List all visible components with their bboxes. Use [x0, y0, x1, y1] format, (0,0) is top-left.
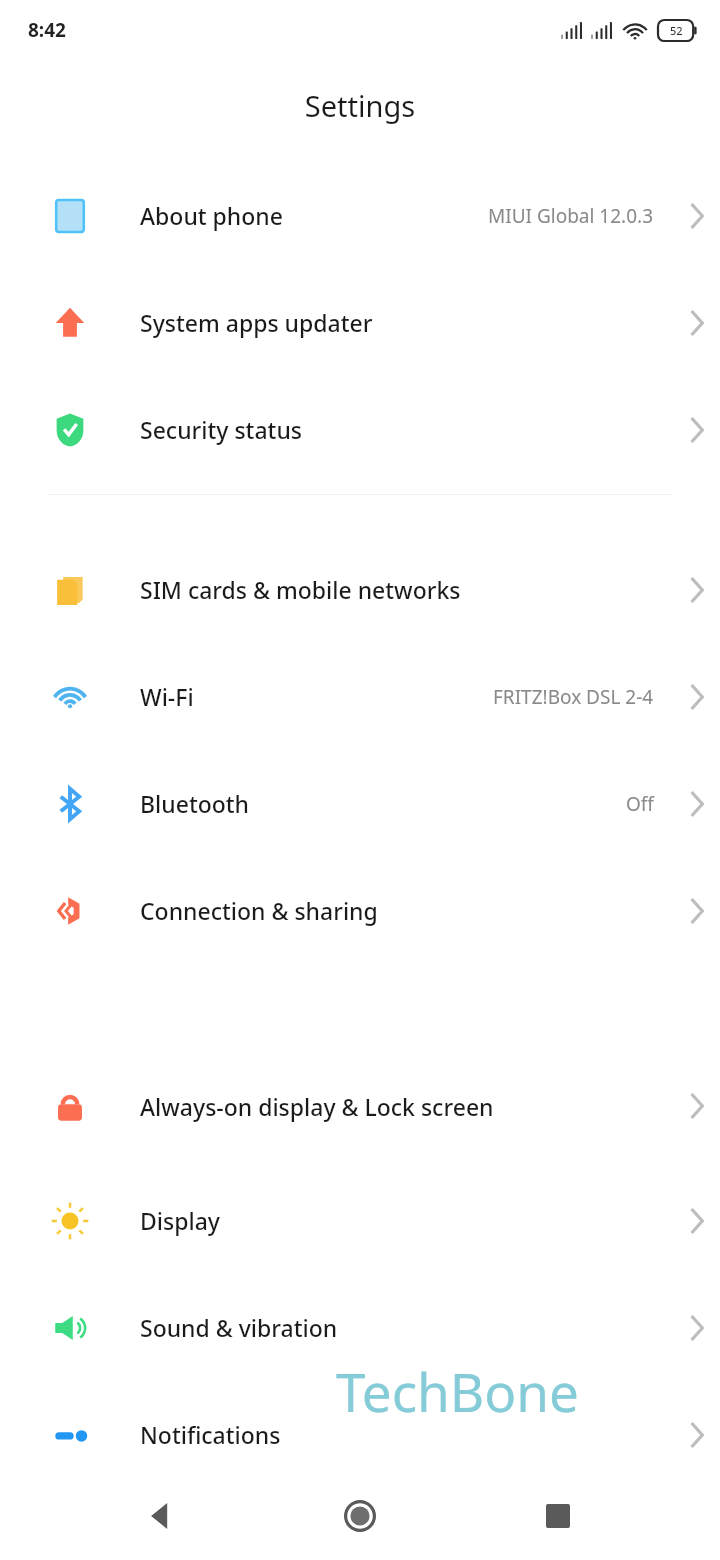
- staticText: Notifications: [140, 1419, 660, 1450]
- button[interactable]: Sound & vibration: [0, 1274, 720, 1381]
- staticText: Off: [626, 791, 654, 817]
- staticText: MIUI Global 12.0.3: [488, 203, 654, 229]
- staticText: 8:42: [28, 17, 66, 43]
- button[interactable]: Display: [0, 1167, 720, 1274]
- staticText: Wi-Fi: [140, 681, 481, 712]
- staticText: TechBone: [336, 1355, 580, 1427]
- button[interactable]: Bluetooth: [0, 750, 720, 857]
- staticText: System apps updater: [140, 307, 660, 338]
- staticText: Bluetooth: [140, 788, 614, 819]
- staticText: Security status: [140, 414, 660, 445]
- button[interactable]: SIM cards & mobile networks: [0, 536, 720, 643]
- staticText: SIM cards & mobile networks: [140, 574, 660, 605]
- staticText: FRITZ!Box DSL 2-4: [493, 684, 654, 710]
- button[interactable]: System apps updater: [0, 269, 720, 376]
- staticText: Settings: [0, 86, 720, 125]
- button[interactable]: Back: [126, 1480, 198, 1552]
- button[interactable]: Notifications: [0, 1381, 720, 1488]
- button[interactable]: Always-on display & Lock screen: [0, 1045, 720, 1167]
- button[interactable]: Security status: [0, 376, 720, 483]
- staticText: About phone: [140, 200, 476, 231]
- staticText: Display: [140, 1205, 660, 1236]
- staticText: 52: [670, 23, 683, 38]
- button[interactable]: Home: [324, 1480, 396, 1552]
- button[interactable]: Connection & sharing: [0, 857, 720, 964]
- staticText: Sound & vibration: [140, 1312, 660, 1343]
- staticText: Connection & sharing: [140, 895, 660, 926]
- button[interactable]: Wi-Fi: [0, 643, 720, 750]
- button[interactable]: About phone: [0, 162, 720, 269]
- button[interactable]: Recent apps: [522, 1480, 594, 1552]
- staticText: Always-on display & Lock screen: [140, 1091, 660, 1122]
